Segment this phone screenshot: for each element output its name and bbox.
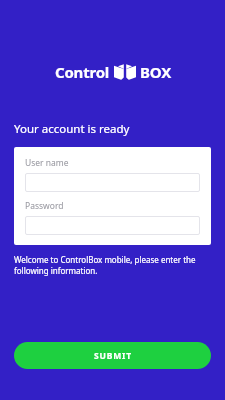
staticText: User name bbox=[25, 157, 69, 169]
staticText: Welcome to ControlBox mobile, please ent… bbox=[14, 254, 211, 276]
button[interactable] bbox=[25, 216, 200, 235]
button[interactable]: SUBMIT bbox=[14, 342, 211, 369]
other: ControlBox logo bbox=[114, 64, 136, 81]
staticText: Control bbox=[55, 62, 110, 82]
staticText: Password bbox=[25, 200, 64, 212]
staticText: Your account is ready bbox=[14, 121, 130, 137]
staticText: SUBMIT bbox=[94, 350, 132, 362]
staticText: BOX bbox=[140, 62, 171, 82]
button[interactable] bbox=[25, 173, 200, 192]
